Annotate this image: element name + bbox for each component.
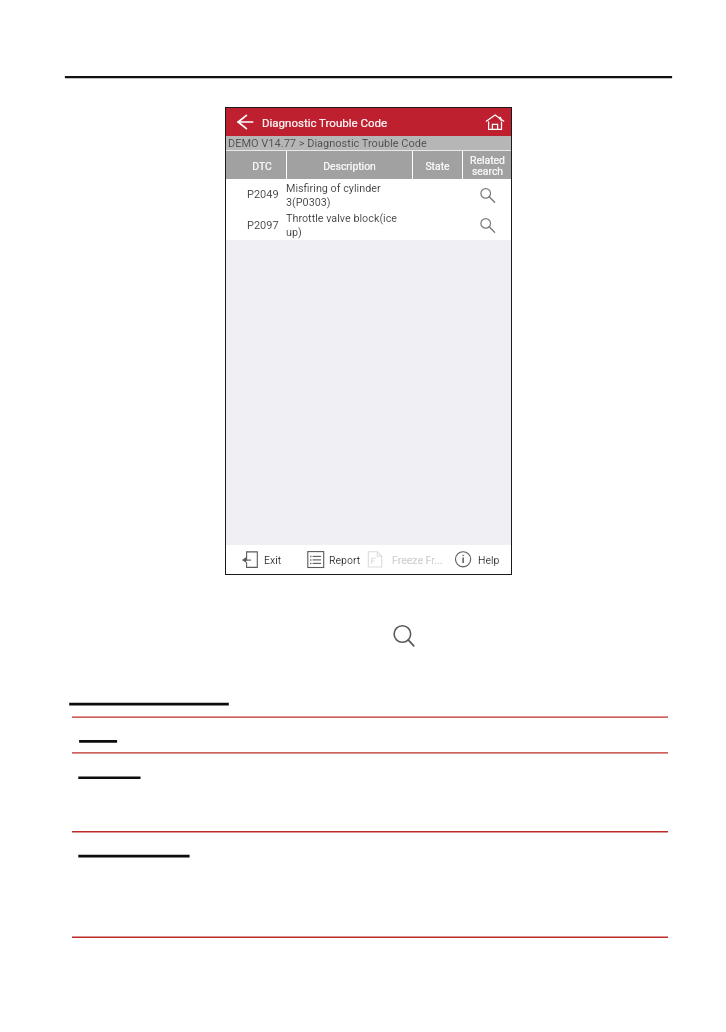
button[interactable]: Back (237, 113, 255, 131)
staticText: Help (478, 554, 500, 566)
staticText: Related search (470, 154, 505, 178)
button[interactable]: Help (455, 545, 500, 574)
button[interactable]: Freeze Fr... (367, 545, 443, 574)
staticText: P2097 (247, 219, 279, 232)
staticText: Diagnostic Trouble Code (262, 116, 388, 129)
staticText: Throttle valve block(ice up) (286, 212, 412, 238)
staticText: P2049 (247, 188, 279, 201)
button[interactable]: Report (307, 545, 361, 574)
staticText: DTC (252, 160, 272, 172)
staticText: Report (329, 554, 361, 566)
staticText: State (425, 160, 450, 172)
staticText: DEMO V14.77 > Diagnostic Trouble Code (228, 137, 427, 150)
button[interactable]: P2049 (226, 179, 511, 210)
button[interactable]: Exit (242, 545, 282, 574)
staticText: Description (323, 160, 376, 172)
staticText: Misfiring of cylinder 3(P0303) (286, 182, 412, 208)
staticText: Exit (264, 554, 282, 566)
button[interactable]: Home (485, 112, 505, 132)
staticText: Freeze Fr... (392, 554, 443, 566)
button[interactable]: P2097 (226, 210, 511, 240)
